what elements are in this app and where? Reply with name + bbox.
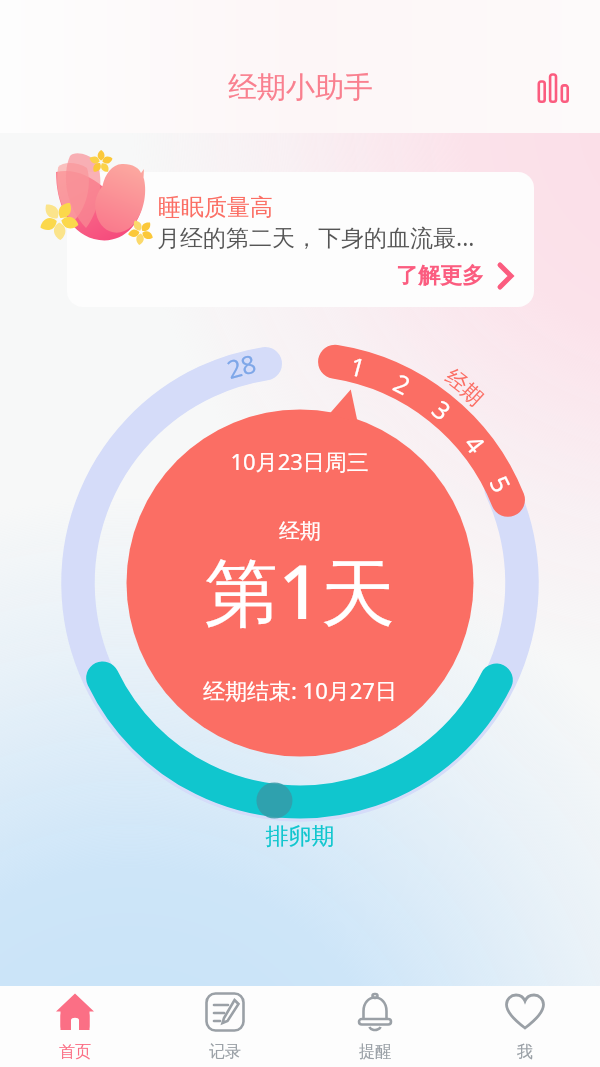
staticText: 月经的第二天，下身的血流最... <box>157 221 475 252</box>
staticText: 我 <box>517 1042 533 1062</box>
staticText: 了解更多 <box>396 262 484 290</box>
button[interactable]: 记录 <box>150 986 300 1067</box>
button[interactable]: 统计 <box>527 61 581 115</box>
staticText: 睡眠质量高 <box>158 193 273 222</box>
button[interactable]: 提醒 <box>300 986 450 1067</box>
staticText: 提醒 <box>359 1042 391 1062</box>
button[interactable]: 首页 <box>0 986 150 1067</box>
staticText: 经期小助手 <box>228 69 373 106</box>
button[interactable]: 睡眠质量高 <box>67 172 534 307</box>
staticText: 首页 <box>59 1042 91 1062</box>
staticText: 记录 <box>209 1042 241 1062</box>
button[interactable]: 我 <box>450 986 600 1067</box>
